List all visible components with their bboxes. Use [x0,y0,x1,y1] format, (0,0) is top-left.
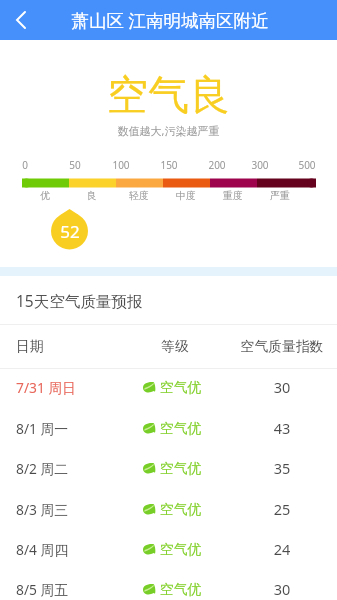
staticText: 30 [227,377,337,397]
staticText: 空气优 [160,379,202,396]
staticText: 严重 [260,189,300,202]
button[interactable]: 8/3 周三 [0,489,337,529]
staticText: 优 [25,189,65,202]
staticText: 空气优 [160,541,202,558]
button[interactable]: 8/2 周二 [0,448,337,488]
staticText: 150 [149,158,189,172]
staticText: 0 [5,158,45,172]
staticText: 空气优 [160,581,202,598]
staticText: 8/5 周五 [16,580,123,599]
staticText: 8/2 周二 [16,459,123,478]
button[interactable]: 15天空气质量预报 [0,276,337,324]
button[interactable]: 8/1 周一 [0,408,337,448]
staticText: 100 [101,158,141,172]
staticText: 等级 [123,338,227,355]
staticText: 空气优 [160,501,202,518]
staticText: 空气质量指数 [227,338,337,355]
staticText: 7/31 周日 [16,378,123,397]
staticText: 萧山区 江南明城南区附近 [22,8,318,32]
staticText: 52 [50,220,90,243]
button[interactable]: 8/5 周五 [0,569,337,600]
staticText: 中度 [166,189,206,202]
staticText: 25 [227,499,337,519]
staticText: 重度 [213,189,253,202]
button[interactable]: 8/4 周四 [0,529,337,569]
staticText: 43 [227,418,337,438]
staticText: 良 [72,189,112,202]
staticText: 30 [227,579,337,599]
staticText: 数值越大,污染越严重 [0,123,337,138]
staticText: 200 [197,158,237,172]
staticText: 空气良 [0,70,337,122]
staticText: 日期 [16,338,123,355]
staticText: 轻度 [119,189,159,202]
staticText: 空气优 [160,420,202,437]
staticText: 空气优 [160,460,202,477]
staticText: 8/4 周四 [16,540,123,559]
button[interactable]: Back [0,0,41,40]
staticText: 8/3 周三 [16,500,123,519]
staticText: 24 [227,539,337,559]
staticText: 300 [240,158,280,172]
staticText: 15天空气质量预报 [16,290,143,311]
staticText: 50 [55,158,95,172]
staticText: 35 [227,458,337,478]
staticText: 500 [287,158,327,172]
staticText: 8/1 周一 [16,419,123,438]
button[interactable]: 7/31 周日 [0,367,337,407]
